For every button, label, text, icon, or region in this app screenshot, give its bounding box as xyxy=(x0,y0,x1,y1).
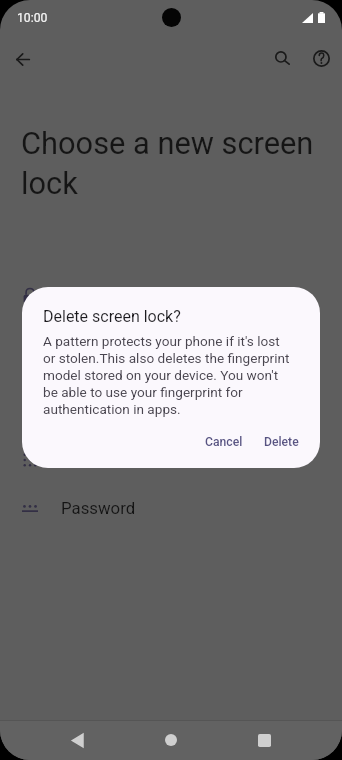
button[interactable]: Home xyxy=(152,721,190,759)
button[interactable]: Search xyxy=(260,36,304,80)
button[interactable]: None xyxy=(0,274,342,318)
button[interactable]: Back xyxy=(1,37,45,81)
staticText: None xyxy=(61,286,101,306)
staticText: Delete xyxy=(264,435,299,449)
button[interactable]: Recents xyxy=(245,721,283,759)
staticText: Password xyxy=(61,498,136,518)
staticText: PIN xyxy=(61,380,89,400)
button[interactable]: Delete xyxy=(254,428,309,456)
button[interactable]: Swipe xyxy=(0,320,342,364)
button[interactable]: Cancel xyxy=(195,428,253,456)
button[interactable]: PIN xyxy=(0,368,342,412)
button[interactable]: Password xyxy=(0,486,342,530)
staticText: Pattern xyxy=(61,450,116,470)
button[interactable]: Help xyxy=(299,36,342,80)
staticText: A pattern protects your phone if it's lo… xyxy=(43,333,290,417)
staticText: 10:00 xyxy=(17,11,48,25)
button[interactable]: Pattern xyxy=(0,438,342,482)
staticText: Choose a new screen lock xyxy=(21,125,321,201)
staticText: Delete screen lock? xyxy=(43,307,181,326)
button[interactable]: Back xyxy=(59,721,97,759)
staticText: Cancel xyxy=(205,435,243,449)
staticText: Swipe xyxy=(61,332,107,352)
